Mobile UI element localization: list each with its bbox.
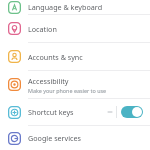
staticText: Language & keyboard	[28, 2, 103, 12]
staticText: Make your phone easier to use	[28, 87, 107, 94]
staticText: Google services	[28, 133, 82, 143]
staticText: Accounts & sync	[28, 52, 83, 62]
button[interactable]: Language & keyboard	[0, 0, 150, 14]
button[interactable]: Toggle shortcut keys	[121, 106, 143, 118]
staticText: Location	[28, 24, 57, 34]
staticText: Shortcut keys	[28, 107, 74, 117]
button[interactable]: Accounts & sync	[0, 43, 150, 70]
staticText: Accessibility	[28, 76, 69, 86]
button[interactable]: Google services	[0, 126, 150, 150]
button[interactable]: Shortcut keys	[0, 99, 150, 125]
button[interactable]: Accessibility	[0, 71, 150, 98]
button[interactable]: Location	[0, 15, 150, 42]
